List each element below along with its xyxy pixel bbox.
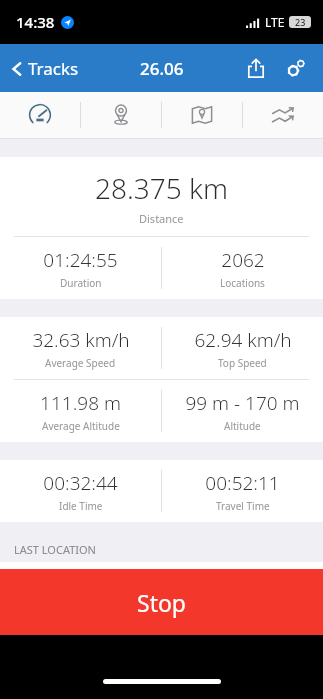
staticText: Tracks: [28, 57, 79, 80]
staticText: Altitude: [224, 419, 261, 433]
button[interactable]: Dashboard: [0, 92, 80, 138]
staticText: 111.98 m: [40, 390, 121, 416]
staticText: Average Altitude: [42, 419, 120, 433]
staticText: Travel Time: [216, 499, 270, 513]
button[interactable]: 49.438550: [0, 562, 161, 624]
button[interactable]: Settings: [279, 51, 313, 85]
button[interactable]: 32.006572: [162, 562, 323, 624]
staticText: 14:38: [16, 12, 55, 32]
staticText: 26.06: [140, 57, 184, 80]
staticText: 28.375 km: [95, 169, 228, 207]
staticText: Distance: [139, 211, 184, 226]
staticText: Duration: [60, 276, 102, 290]
staticText: Average Speed: [45, 356, 116, 370]
button[interactable]: 32.63 km/h: [0, 317, 161, 379]
button[interactable]: Tracks: [8, 57, 79, 80]
staticText: 00:32:44: [43, 470, 118, 496]
button[interactable]: 62.94 km/h: [162, 317, 323, 379]
staticText: 2062: [221, 247, 265, 273]
staticText: 62.94 km/h: [194, 327, 292, 353]
button[interactable]: Stop: [0, 569, 323, 635]
button[interactable]: 00:32:44: [0, 460, 161, 522]
button[interactable]: Locations: [81, 92, 161, 138]
button[interactable]: 111.98 m: [0, 380, 161, 442]
staticText: 23: [295, 16, 306, 28]
staticText: Locations: [220, 276, 265, 290]
button[interactable]: 99 m - 170 m: [162, 380, 323, 442]
button[interactable]: 28.375 km: [0, 169, 323, 226]
staticText: 01:24:55: [43, 247, 118, 273]
button[interactable]: Share: [239, 51, 273, 85]
staticText: LTE: [265, 14, 285, 30]
staticText: 99 m - 170 m: [185, 390, 300, 416]
staticText: Top Speed: [218, 356, 267, 370]
staticText: LAST LOCATION: [14, 542, 96, 557]
button[interactable]: 2062: [162, 237, 323, 299]
button[interactable]: 01:24:55: [0, 237, 161, 299]
button[interactable]: Chart: [243, 92, 323, 138]
staticText: Idle Time: [59, 499, 103, 513]
button[interactable]: 00:52:11: [162, 460, 323, 522]
staticText: 00:52:11: [205, 470, 280, 496]
staticText: Stop: [137, 587, 186, 618]
staticText: 32.63 km/h: [32, 327, 130, 353]
button[interactable]: Map: [162, 92, 242, 138]
